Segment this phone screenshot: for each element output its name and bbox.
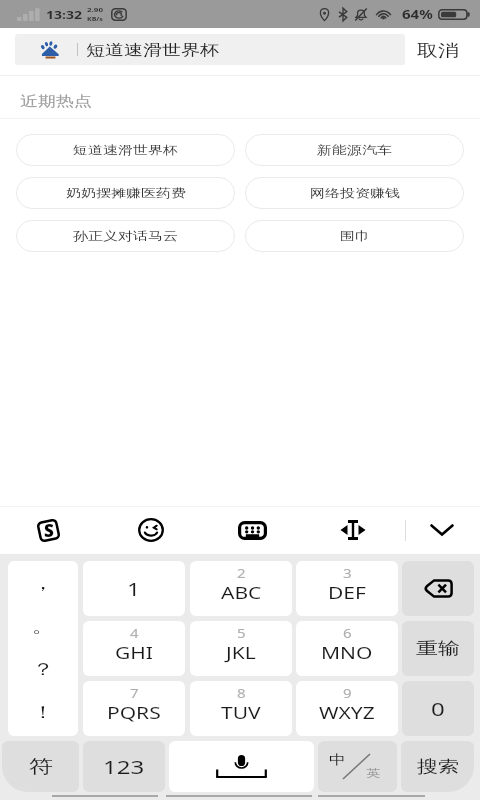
button[interactable]: 9 (296, 681, 398, 736)
button[interactable]: Move cursor (323, 506, 383, 554)
button[interactable]: 123 (83, 741, 165, 792)
button[interactable]: 围巾 (245, 220, 464, 252)
staticText: 2 (237, 565, 246, 581)
button[interactable]: 重输 (402, 621, 474, 676)
staticText: 近期热点 (20, 92, 92, 110)
staticText: 奶奶摆摊赚医药费 (66, 186, 186, 201)
button[interactable]: 5 (190, 621, 292, 676)
staticText: 中 (329, 751, 346, 768)
button[interactable]: Backspace (402, 561, 474, 616)
staticText: 短道速滑世界杯 (86, 41, 219, 59)
button[interactable]: 孙正义对话马云 (16, 220, 235, 252)
button[interactable]: Chinese English toggle (318, 741, 397, 792)
staticText: MNO (321, 642, 373, 665)
staticText: 围巾 (340, 229, 370, 244)
staticText: 5 (237, 625, 246, 641)
staticText: 8 (237, 685, 246, 701)
staticText: ？ (32, 659, 54, 681)
staticText: 7 (130, 685, 139, 701)
button[interactable]: ， (8, 561, 78, 736)
staticText: 13:32 (46, 7, 82, 22)
staticText: 英 (366, 767, 380, 781)
staticText: 新能源汽车 (317, 143, 392, 158)
button[interactable]: 6 (296, 621, 398, 676)
staticText: 64% (402, 6, 433, 22)
staticText: DEF (328, 582, 366, 605)
staticText: KB/s (87, 16, 103, 23)
staticText: PQRS (107, 702, 161, 725)
button[interactable]: 搜索 (401, 741, 474, 792)
staticText: 6 (343, 625, 352, 641)
staticText: WXYZ (319, 702, 375, 725)
button[interactable]: 8 (190, 681, 292, 736)
staticText: 短道速滑世界杯 (73, 143, 178, 158)
button[interactable]: Space (169, 741, 314, 792)
staticText: 取消 (417, 41, 459, 61)
staticText: 重输 (416, 638, 460, 660)
button[interactable]: 短道速滑世界杯 (15, 34, 405, 65)
staticText: TUV (221, 702, 261, 725)
staticText: 2.90 (87, 6, 103, 13)
staticText: 0 (431, 696, 445, 721)
staticText: GHI (115, 642, 153, 665)
staticText: 4 (130, 625, 139, 641)
button[interactable]: Emoji (121, 506, 181, 554)
button[interactable]: 网络投资赚钱 (245, 177, 464, 209)
button[interactable]: 新能源汽车 (245, 134, 464, 166)
staticText: 孙正义对话马云 (73, 229, 178, 244)
button[interactable]: 取消 (400, 28, 475, 75)
staticText: 。 (32, 616, 54, 638)
staticText: 9 (343, 685, 352, 701)
staticText: ABC (221, 582, 262, 605)
staticText: 1 (127, 576, 141, 601)
button[interactable]: 2 (190, 561, 292, 616)
staticText: ， (32, 573, 54, 595)
button[interactable]: 0 (402, 681, 474, 736)
staticText: 网络投资赚钱 (310, 186, 400, 201)
button[interactable]: 短道速滑世界杯 (16, 134, 235, 166)
staticText: ！ (32, 702, 54, 724)
button[interactable]: 3 (296, 561, 398, 616)
staticText: 符 (29, 755, 53, 779)
button[interactable]: 1 (83, 561, 185, 616)
staticText: JKL (226, 642, 256, 665)
staticText: 123 (103, 754, 145, 779)
button[interactable]: Switch keyboard layout (222, 506, 282, 554)
button[interactable]: 7 (83, 681, 185, 736)
staticText: S (44, 519, 54, 542)
button[interactable]: 符 (2, 741, 79, 792)
button[interactable]: Hide keyboard (412, 506, 472, 554)
button[interactable]: 4 (83, 621, 185, 676)
button[interactable]: 奶奶摆摊赚医药费 (16, 177, 235, 209)
staticText: 3 (343, 565, 352, 581)
staticText: 搜索 (417, 757, 459, 777)
button[interactable]: Sogou input settings (18, 506, 78, 554)
